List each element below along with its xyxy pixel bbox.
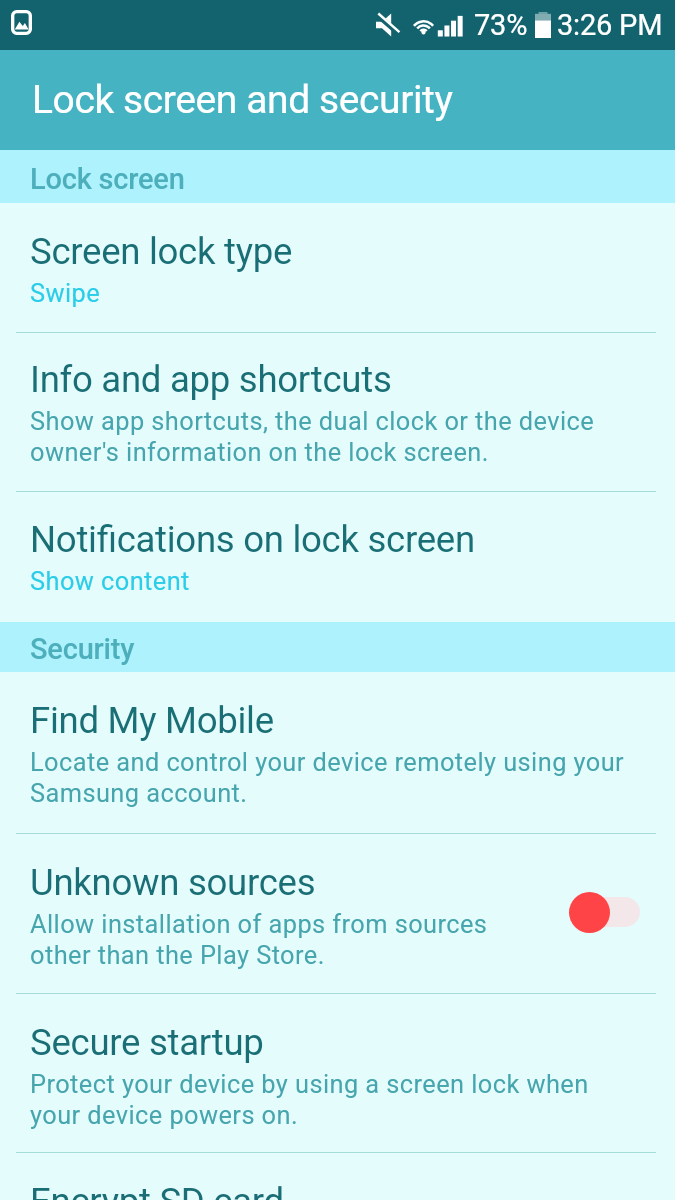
staticText: Secure startup [30, 1021, 264, 1064]
staticText: Find My Mobile [30, 699, 274, 742]
staticText: Encrypt SD card [30, 1180, 284, 1200]
staticText: Screen lock type [30, 230, 293, 273]
staticText: 3:26 PM [557, 8, 663, 42]
button[interactable]: Encrypt SD card [0, 1153, 675, 1200]
button[interactable]: Secure startup [0, 994, 675, 1152]
staticText: 73% [474, 8, 528, 42]
button[interactable]: Find My Mobile [0, 672, 675, 833]
staticText: Locate and control your device remotely … [30, 747, 640, 809]
staticText: Lock screen [30, 162, 185, 196]
staticText: Swipe [30, 278, 101, 308]
staticText: Protect your device by using a screen lo… [30, 1069, 640, 1131]
staticText: Lock screen and security [32, 77, 453, 123]
staticText: Allow installation of apps from sources … [30, 909, 550, 971]
button[interactable]: Info and app shortcuts [0, 333, 675, 491]
staticText: Info and app shortcuts [30, 358, 392, 401]
staticText: Show app shortcuts, the dual clock or th… [30, 406, 640, 468]
staticText: Security [30, 632, 135, 666]
staticText: Notifications on lock screen [30, 518, 475, 561]
staticText: Unknown sources [30, 861, 316, 904]
button[interactable]: Notifications on lock screen [0, 492, 675, 622]
button[interactable]: Unknown sources [0, 834, 675, 993]
staticText: Show content [30, 566, 190, 596]
button[interactable]: Unknown sources toggle [569, 885, 640, 939]
button[interactable]: Screen lock type [0, 203, 675, 332]
